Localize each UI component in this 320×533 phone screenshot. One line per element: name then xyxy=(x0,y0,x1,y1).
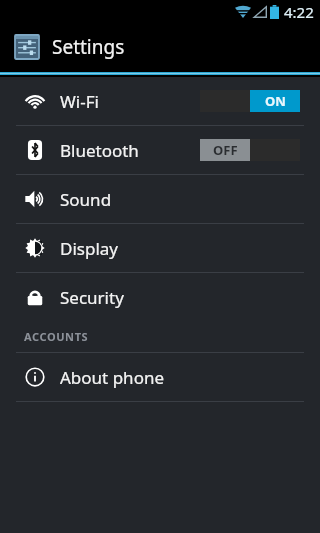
button[interactable]: Wi-Fi xyxy=(0,77,320,125)
staticText: Sound xyxy=(60,188,112,211)
staticText: About phone xyxy=(60,366,165,389)
staticText: Settings xyxy=(52,34,125,60)
staticText: Display xyxy=(60,237,118,260)
staticText: Bluetooth xyxy=(60,139,139,162)
button[interactable]: Switch on xyxy=(200,90,300,112)
button[interactable]: Bluetooth xyxy=(0,126,320,174)
staticText: Wi-Fi xyxy=(60,90,99,113)
staticText: ACCOUNTS xyxy=(24,329,89,344)
staticText: Security xyxy=(60,286,124,309)
staticText: OFF xyxy=(213,141,238,159)
button[interactable]: Settings xyxy=(0,24,320,70)
staticText: 4:22 xyxy=(284,2,314,22)
staticText: ON xyxy=(265,92,286,110)
button[interactable]: Display xyxy=(0,224,320,272)
button[interactable]: About phone xyxy=(0,353,320,401)
button[interactable]: Switch off xyxy=(200,139,300,161)
button[interactable]: Sound xyxy=(0,175,320,223)
button[interactable]: Security xyxy=(0,273,320,321)
